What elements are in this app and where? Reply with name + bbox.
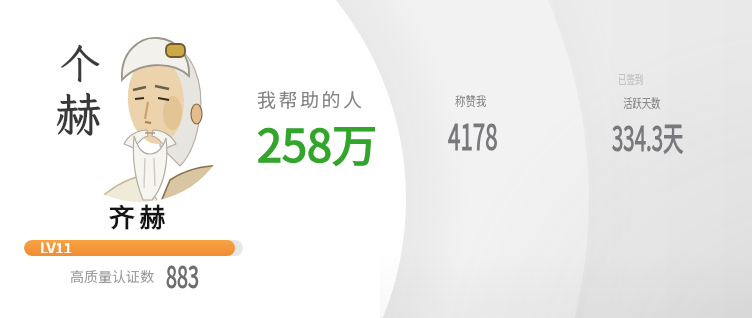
staticText: 活跃天数 <box>623 93 661 112</box>
staticText: LV11 <box>40 240 73 253</box>
button[interactable]: 活跃天数 <box>623 93 661 112</box>
staticText: 4178 <box>448 108 498 160</box>
staticText: 883 <box>166 253 199 296</box>
button[interactable]: 高质量认证数 <box>70 266 154 286</box>
button[interactable]: 个 <box>60 37 100 90</box>
button[interactable]: LV11 <box>24 240 243 256</box>
staticText: 齐赫 <box>109 197 171 235</box>
button[interactable]: 称赞我 <box>455 91 487 110</box>
button[interactable]: 258万 <box>257 110 377 175</box>
button[interactable]: 已签到 <box>618 70 644 87</box>
staticText: 赫 <box>55 82 102 144</box>
staticText: 称赞我 <box>455 91 487 110</box>
button[interactable]: 883 <box>166 253 199 296</box>
button[interactable]: 334.3天 <box>612 112 683 161</box>
button[interactable]: 个 <box>48 18 232 202</box>
button[interactable]: 4178 <box>448 108 498 160</box>
staticText: 334.3天 <box>612 112 683 161</box>
button[interactable]: 齐赫 <box>40 197 240 235</box>
button[interactable]: 我帮助的人 <box>257 85 365 113</box>
staticText: 已签到 <box>618 70 644 87</box>
